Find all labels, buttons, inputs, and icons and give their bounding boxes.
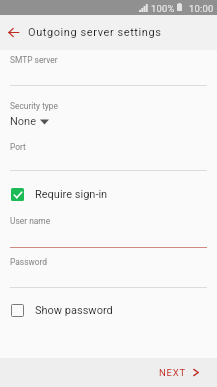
staticText: Show password	[35, 304, 113, 317]
button[interactable]: Show password	[0, 304, 217, 317]
staticText: 10:00	[189, 3, 214, 14]
button[interactable]: Navigate up	[0, 15, 27, 50]
staticText: NEXT	[159, 367, 187, 378]
button[interactable]: Require sign-in	[0, 188, 217, 201]
staticText: Outgoing server settings	[28, 26, 162, 39]
staticText: None	[10, 115, 37, 128]
staticText: 100%	[151, 3, 175, 14]
staticText: Password	[10, 257, 48, 267]
staticText: User name	[10, 216, 51, 226]
button[interactable]: None	[0, 115, 217, 128]
staticText: Security type	[10, 101, 59, 111]
button[interactable]: NEXT	[151, 363, 217, 382]
staticText: Require sign-in	[35, 188, 108, 201]
staticText: Port	[10, 142, 26, 152]
staticText: SMTP server	[10, 55, 58, 65]
